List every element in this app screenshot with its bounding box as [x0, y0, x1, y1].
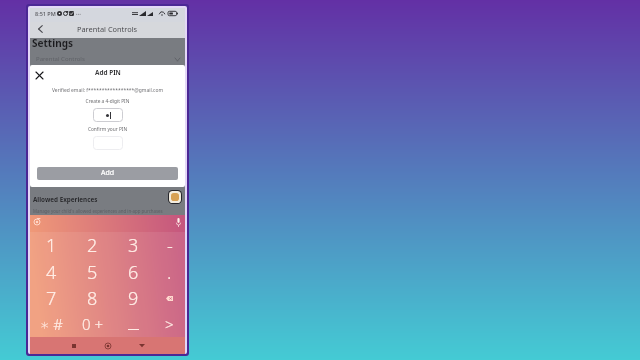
button[interactable]: -	[154, 232, 185, 259]
staticText: ∗ #	[40, 314, 63, 334]
staticText: Add PIN	[95, 68, 121, 77]
button[interactable]: Back	[125, 337, 159, 354]
staticText: 8:51 PM	[35, 10, 56, 17]
staticText: 5	[87, 260, 98, 285]
button[interactable]: 7	[30, 285, 72, 311]
button[interactable]: Keyboard settings	[33, 218, 41, 226]
staticText: -	[167, 233, 173, 258]
button[interactable]: Voice input	[176, 218, 181, 227]
button[interactable]: 8	[72, 285, 113, 311]
button[interactable]	[93, 136, 123, 150]
staticText: 6	[128, 260, 139, 285]
staticText: .	[167, 260, 172, 285]
button[interactable]: 2	[72, 232, 113, 259]
staticText: Confirm your PIN	[30, 126, 185, 133]
staticText: 4	[46, 260, 57, 285]
staticText: 9	[128, 286, 139, 311]
button[interactable]: Recents	[57, 337, 91, 354]
staticText: Settings	[32, 36, 73, 50]
staticText: Manage your child's allowed experiences …	[33, 208, 163, 214]
staticText: Allowed Experiences	[33, 195, 98, 204]
staticText: 1	[46, 233, 57, 258]
staticText: Verified email: f*****************@gmail…	[30, 87, 185, 94]
button[interactable]: 3	[113, 232, 154, 259]
staticText: 8	[87, 286, 98, 311]
button[interactable]: Profile	[171, 193, 179, 201]
button[interactable]: Close	[34, 70, 45, 81]
staticText: 0 +	[82, 314, 104, 334]
button[interactable]: >	[154, 311, 185, 337]
button[interactable]: Back	[32, 21, 49, 37]
button[interactable]: Add	[37, 167, 178, 180]
button[interactable]: .	[154, 259, 185, 285]
button[interactable]	[113, 311, 154, 337]
staticText: Create a 4-digit PIN	[30, 98, 185, 105]
staticText: Add	[101, 168, 115, 178]
staticText: 2	[87, 233, 98, 258]
button[interactable]	[93, 108, 123, 122]
staticText: Parental Controls	[77, 24, 138, 34]
button[interactable]	[154, 285, 185, 311]
staticText: 7	[46, 286, 57, 311]
button[interactable]: Parental Controls	[30, 53, 185, 65]
button[interactable]: 5	[72, 259, 113, 285]
button[interactable]: 6	[113, 259, 154, 285]
staticText: Parental Controls	[36, 55, 85, 63]
button[interactable]: 9	[113, 285, 154, 311]
button[interactable]: 0 +	[72, 311, 113, 337]
button[interactable]: 1	[30, 232, 72, 259]
button[interactable]: 4	[30, 259, 72, 285]
button[interactable]: Home	[91, 337, 125, 354]
staticText: >	[165, 314, 174, 334]
staticText: 3	[128, 233, 139, 258]
button[interactable]: ∗ #	[30, 311, 72, 337]
